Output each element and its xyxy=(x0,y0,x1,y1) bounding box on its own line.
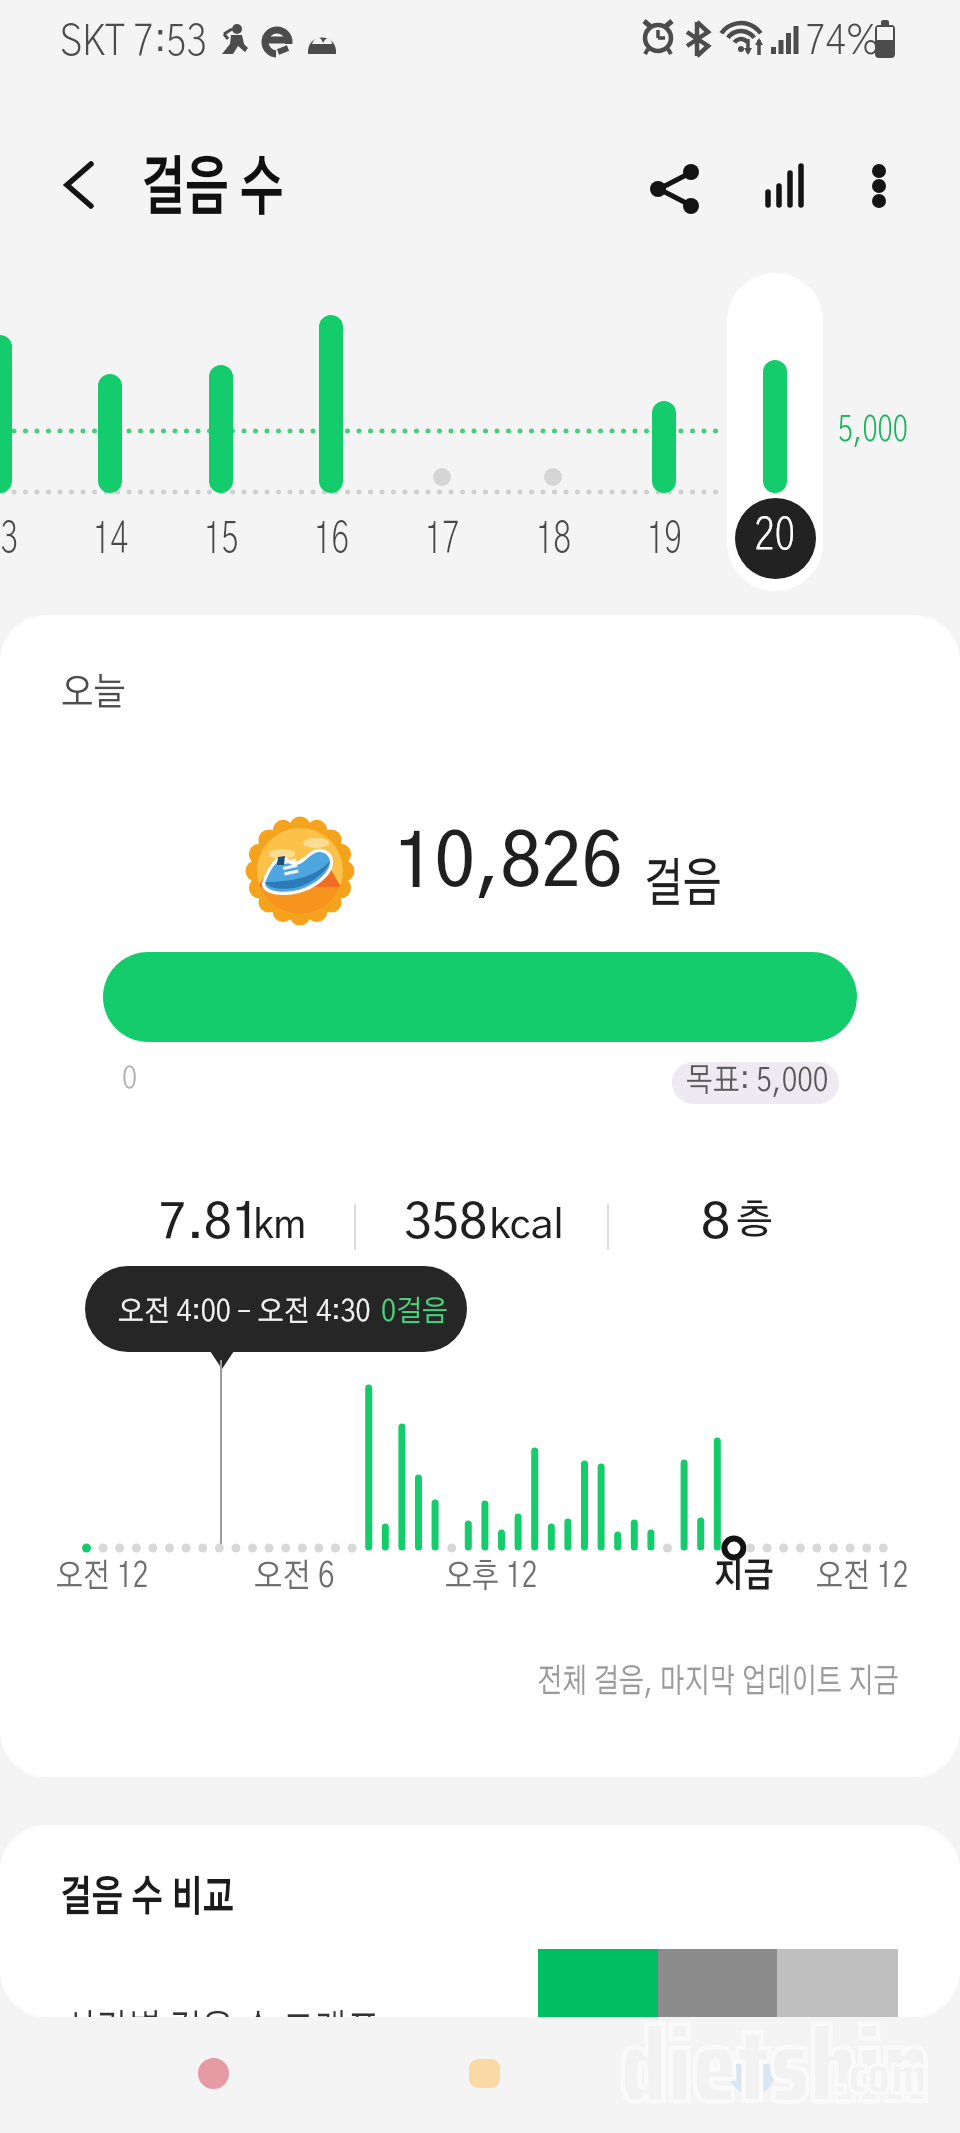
staticText: 19 xyxy=(647,518,682,561)
staticText: 14 xyxy=(93,518,128,561)
staticText: 16 xyxy=(314,518,349,561)
staticText: 걸음 xyxy=(644,859,722,912)
staticText: 358 xyxy=(404,1200,488,1248)
button[interactable]: Day 15 xyxy=(171,260,271,580)
button[interactable]: More options xyxy=(840,147,918,225)
staticText: 7.81 xyxy=(159,1200,260,1248)
staticText: 8 xyxy=(701,1200,731,1248)
button[interactable]: Day 17 xyxy=(392,260,492,580)
staticText: SKT 7:53 xyxy=(60,20,207,64)
staticText: 전체 걸음, 마지막 업데이트 지금 xyxy=(537,1665,899,1699)
staticText: 74% xyxy=(806,20,880,62)
button[interactable] xyxy=(727,273,823,591)
button[interactable]: Day 14 xyxy=(60,260,160,580)
staticText: 15 xyxy=(204,518,239,561)
staticText: km xyxy=(253,1207,307,1246)
staticText: 17 xyxy=(425,518,460,561)
button[interactable]: Back xyxy=(38,143,122,227)
staticText: 5,000 xyxy=(838,413,908,448)
button[interactable]: Day 19 xyxy=(614,260,714,580)
staticText: 오전 6 xyxy=(254,1560,335,1594)
button[interactable]: Day 13 xyxy=(0,260,50,580)
staticText: 20 xyxy=(754,514,795,559)
staticText: 지금 xyxy=(713,1560,774,1594)
staticText: 오늘 xyxy=(61,674,125,713)
staticText: .com xyxy=(833,2032,928,2117)
staticText: 18 xyxy=(536,518,571,561)
button[interactable]: Day 18 xyxy=(503,260,603,580)
staticText: 10,826 xyxy=(394,827,623,901)
staticText: 걸음 수 비교 xyxy=(60,1877,235,1919)
staticText: .com xyxy=(833,2032,928,2117)
staticText: 목표: 5,000 xyxy=(686,1065,829,1098)
staticText: kcal xyxy=(489,1207,564,1246)
staticText: 걸음 수 xyxy=(141,158,284,222)
button[interactable]: Day 16 xyxy=(281,260,381,580)
button[interactable]: Statistics xyxy=(748,147,826,225)
staticText: 0 xyxy=(122,1065,137,1094)
button[interactable]: 오늘 xyxy=(0,615,960,1777)
staticText: 오후 12 xyxy=(445,1560,538,1594)
staticText: 시간별 걸음 수 그래프 xyxy=(64,2010,379,2017)
button[interactable]: 걸음 수 비교 xyxy=(0,1825,960,2017)
staticText: 오전 12 xyxy=(56,1560,149,1594)
staticText: 0걸음 xyxy=(381,1297,448,1327)
staticText: dietshin xyxy=(620,1983,930,2133)
staticText: 층 xyxy=(736,1201,773,1241)
button[interactable]: Share xyxy=(634,148,716,230)
button[interactable]: Day 20 xyxy=(735,498,816,579)
staticText: 오전 12 xyxy=(816,1560,909,1594)
staticText: 13 xyxy=(0,518,18,561)
staticText: 오전 4:00 – 오전 4:30 xyxy=(118,1297,371,1327)
staticText: dietshin xyxy=(620,1983,930,2133)
